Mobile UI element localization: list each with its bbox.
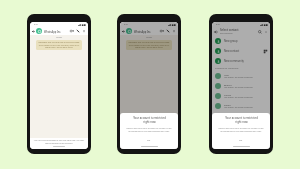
staticText: Your account is restricted right now bbox=[132, 116, 167, 124]
button[interactable]: New contact bbox=[212, 46, 270, 56]
staticText: Today bbox=[146, 36, 153, 39]
button[interactable]: WhatsApp Inc. bbox=[30, 27, 88, 35]
staticText: Restrict will be on your account for 30 … bbox=[126, 127, 172, 133]
staticText: Alex bbox=[224, 73, 229, 76]
button[interactable]: Call bbox=[76, 29, 80, 33]
button[interactable]: Alex bbox=[212, 71, 270, 81]
staticText: WhatsApp Inc. bbox=[44, 30, 62, 33]
staticText: Bianca bbox=[224, 83, 232, 86]
staticText: You can't send messages to this chat rig… bbox=[33, 139, 85, 144]
button[interactable]: WhatsApp Inc. bbox=[120, 27, 178, 35]
button[interactable]: More options bbox=[172, 29, 176, 33]
staticText: 9:41 bbox=[34, 23, 39, 26]
staticText: You can't send messages to this chat rig… bbox=[123, 139, 175, 144]
staticText: Contacts on WhatsApp bbox=[215, 67, 239, 70]
staticText: Restrict will be on your account for 30 … bbox=[218, 127, 264, 133]
button[interactable]: Gabriel bbox=[212, 131, 270, 141]
button[interactable]: Carlos bbox=[212, 91, 270, 101]
staticText: New group bbox=[224, 39, 238, 43]
button[interactable]: New community bbox=[212, 56, 270, 66]
button[interactable]: OK bbox=[235, 137, 247, 142]
staticText: Hey there! I am using WhatsApp bbox=[224, 106, 253, 109]
staticText: OK bbox=[239, 138, 243, 141]
staticText: Hey there! I am using WhatsApp bbox=[224, 126, 253, 129]
button[interactable]: More options bbox=[264, 30, 268, 34]
button[interactable]: New group bbox=[212, 36, 270, 46]
staticText: New contact bbox=[224, 49, 240, 53]
staticText: Today bbox=[56, 36, 63, 39]
staticText: Hey there! I am using WhatsApp bbox=[224, 86, 253, 89]
button[interactable]: Eduardo bbox=[212, 111, 270, 121]
staticText: Hey there! I am using WhatsApp bbox=[224, 116, 253, 119]
button[interactable]: Call bbox=[166, 29, 170, 33]
staticText: Messages and calls are end-to-end encryp… bbox=[128, 41, 170, 49]
staticText: 9:41 bbox=[216, 23, 221, 26]
button[interactable]: Fabiana bbox=[212, 121, 270, 131]
staticText: Hey there! I am using WhatsApp bbox=[224, 76, 253, 79]
staticText: Select contact bbox=[220, 28, 239, 32]
button[interactable]: Video call bbox=[160, 29, 164, 33]
button[interactable]: Diana bbox=[212, 101, 270, 111]
button[interactable]: Search bbox=[258, 30, 262, 34]
staticText: OK bbox=[147, 138, 151, 141]
staticText: 256 contacts bbox=[220, 32, 233, 35]
button[interactable]: OK bbox=[143, 137, 155, 142]
button[interactable]: Video call bbox=[70, 29, 74, 33]
staticText: WhatsApp Inc. bbox=[134, 30, 152, 33]
staticText: Carlos bbox=[224, 93, 232, 96]
staticText: Diana bbox=[224, 103, 231, 106]
button[interactable]: Scan QR code bbox=[264, 50, 267, 53]
staticText: 9:41 bbox=[124, 23, 129, 26]
button[interactable]: More options bbox=[82, 29, 86, 33]
staticText: Your account is restricted right now bbox=[224, 116, 259, 124]
staticText: Messages and calls are end-to-end encryp… bbox=[38, 41, 80, 49]
staticText: Hey there! I am using WhatsApp bbox=[224, 96, 253, 99]
staticText: New community bbox=[224, 59, 244, 63]
button[interactable]: Bianca bbox=[212, 81, 270, 91]
